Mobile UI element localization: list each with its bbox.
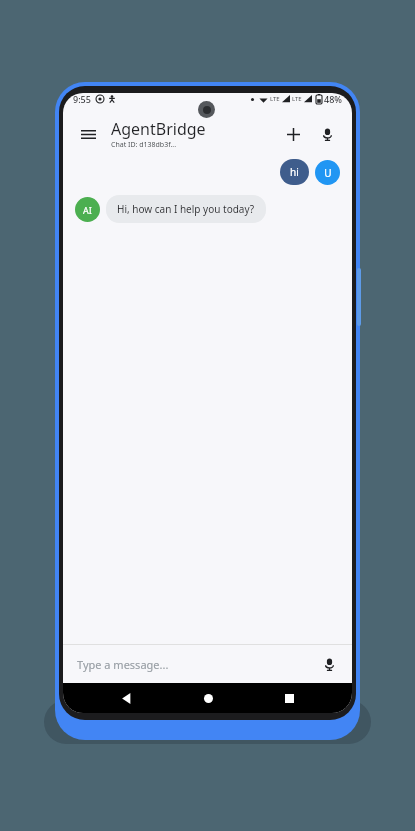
staticText: LTE [292,95,302,103]
button[interactable]: Type a message... [77,657,318,672]
staticText: Hi, how can I help you today? [117,202,255,216]
staticText: Chat ID: d138db3f... [111,140,177,150]
button[interactable]: Home [190,683,226,713]
button[interactable]: Hi, how can I help you today? [106,195,266,223]
staticText: hi [290,165,299,179]
button[interactable]: New chat [280,121,306,147]
staticText: AI [83,204,92,216]
staticText: AgentBridge [111,118,206,140]
button[interactable]: Recent apps [271,683,307,713]
button[interactable]: Voice input [314,121,340,147]
button[interactable]: hi [280,159,309,185]
button[interactable]: Back [108,683,144,713]
staticText: U [324,166,332,180]
button[interactable]: Open navigation menu [75,121,101,147]
staticText: 9:55 [73,93,91,105]
button[interactable]: Record voice message [318,653,340,675]
staticText: Type a message... [77,657,169,672]
staticText: LTE [270,95,280,103]
staticText: 48% [324,93,342,105]
